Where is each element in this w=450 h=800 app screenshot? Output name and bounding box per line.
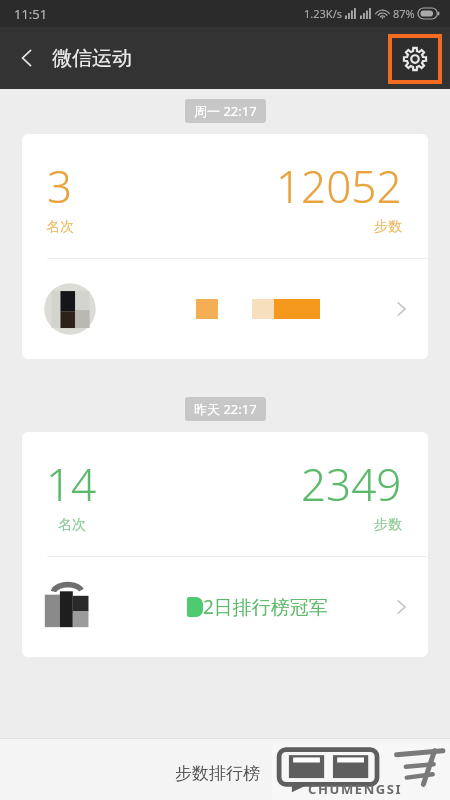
staticText: 微信运动 (52, 46, 132, 71)
staticText: 周一 22:17 (194, 102, 257, 120)
staticText: 1.23K/s (304, 6, 342, 21)
staticText: 11:51 (14, 5, 48, 23)
staticText: 名次 (46, 218, 74, 236)
staticText: 步数排行榜 (175, 763, 260, 784)
staticText: 3 (47, 156, 73, 216)
button[interactable]: Back (6, 37, 48, 79)
staticText: 步数 (374, 516, 402, 534)
staticText: 2日排行榜冠军 (203, 594, 328, 620)
staticText: 名次 (58, 516, 86, 534)
staticText: 2349 (301, 454, 402, 514)
button[interactable]: 3 (22, 134, 428, 359)
button[interactable]: Settings (392, 38, 438, 80)
staticText: CHUMENGSI (308, 780, 403, 798)
button[interactable]: 14 (22, 432, 428, 657)
staticText: 步数 (374, 218, 402, 236)
staticText: 87% (393, 6, 415, 21)
staticText: 12052 (276, 156, 402, 216)
staticText: 昨天 22:17 (194, 400, 257, 418)
staticText: 14 (46, 454, 97, 514)
